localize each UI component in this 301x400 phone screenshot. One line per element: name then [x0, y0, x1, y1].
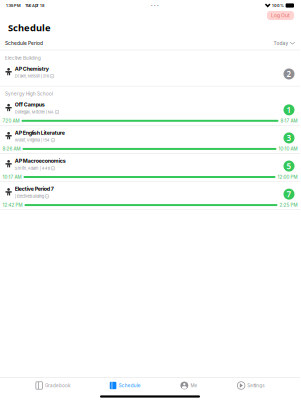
staticText: AP English Literature: [15, 129, 65, 136]
button[interactable]: AP English Literature: [0, 126, 300, 153]
staticText: Drake, Nelson | 216: [15, 74, 49, 78]
staticText: 1:55 PM: [6, 3, 21, 8]
staticText: 10:17 AM: [2, 174, 21, 180]
staticText: Off Campus: [15, 101, 45, 108]
button[interactable]: AP Chemistry: [0, 62, 300, 86]
staticText: Woolf, Virginia | 154: [15, 138, 50, 142]
staticText: Smith, Adam | 448: [15, 166, 50, 171]
button[interactable]: AP Macroeconomics: [0, 154, 300, 181]
staticText: | ElectiveBuilding: [15, 194, 44, 199]
staticText: Donegall, Mitchel | NA: [15, 110, 54, 114]
button[interactable]: Today: [274, 39, 295, 47]
staticText: AP Macroeconomics: [15, 157, 66, 164]
staticText: Me: [190, 383, 197, 388]
staticText: 7:20 AM: [2, 118, 19, 124]
staticText: Tue Apr 18: [25, 3, 45, 8]
staticText: 12:42 PM: [2, 202, 22, 208]
staticText: 2: [286, 69, 291, 79]
button[interactable]: Off Campus: [0, 98, 300, 125]
staticText: • • •: [151, 3, 159, 8]
staticText: 5: [286, 161, 291, 171]
button[interactable]: Elective Period 7: [0, 182, 300, 209]
staticText: 7: [286, 189, 291, 199]
staticText: Schedule Period: [5, 40, 43, 46]
staticText: 1: [286, 105, 291, 115]
button[interactable]: Schedule: [106, 380, 145, 391]
staticText: 100%: [272, 3, 284, 8]
button[interactable]: Me: [176, 380, 201, 391]
staticText: 12:00 PM: [277, 174, 297, 180]
staticText: Schedule: [8, 21, 51, 34]
staticText: Synergy High School: [5, 91, 53, 96]
staticText: Today: [274, 40, 289, 46]
button[interactable]: Log Out: [267, 11, 294, 20]
staticText: Elective Period 7: [15, 186, 54, 192]
staticText: Elective Building: [5, 55, 41, 61]
button[interactable]: Settings: [233, 379, 268, 391]
staticText: 2:25 PM: [279, 202, 297, 208]
staticText: AP Chemistry: [15, 65, 49, 72]
staticText: 8:26 AM: [2, 146, 20, 152]
staticText: 10:10 AM: [278, 146, 297, 152]
button[interactable]: Gradebook: [32, 380, 74, 391]
staticText: Log Out: [271, 12, 290, 18]
staticText: Schedule: [119, 383, 141, 388]
staticText: Settings: [247, 383, 264, 388]
staticText: 3: [286, 133, 291, 143]
staticText: Gradebook: [45, 383, 70, 388]
staticText: 8:17 AM: [280, 118, 297, 124]
